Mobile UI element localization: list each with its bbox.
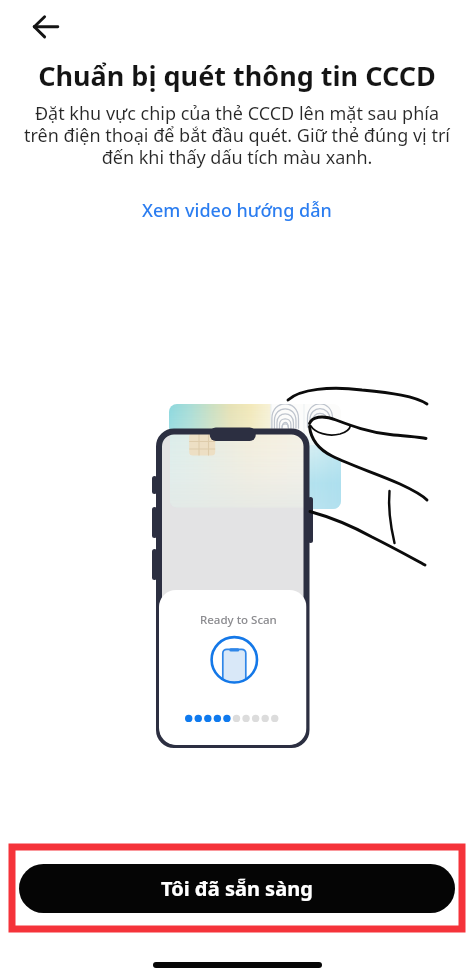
button[interactable]: Xem video hướng dẫn <box>128 193 346 228</box>
button[interactable]: Back <box>13 5 59 51</box>
staticText: Tôi đã sẵn sàng <box>161 875 313 902</box>
staticText: Xem video hướng dẫn <box>142 198 332 223</box>
staticText: Chuẩn bị quét thông tin CCCD <box>4 57 470 94</box>
staticText: Đặt khu vực chip của thẻ CCCD lên mặt sa… <box>2 101 472 170</box>
button[interactable]: Tôi đã sẵn sàng <box>19 864 455 913</box>
staticText: Ready to Scan <box>200 612 277 628</box>
